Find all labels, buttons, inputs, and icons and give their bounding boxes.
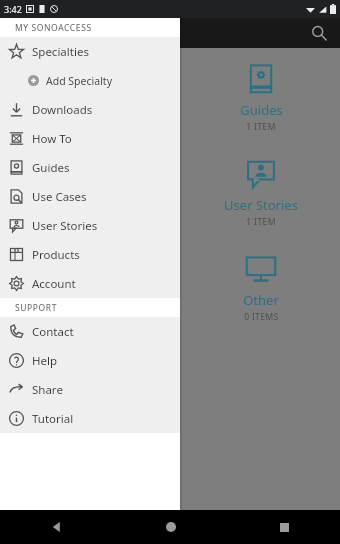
- staticText: User Stories: [32, 218, 98, 234]
- staticText: Help: [32, 353, 58, 369]
- button[interactable]: Recents: [267, 510, 301, 544]
- button[interactable]: Specialties: [0, 37, 180, 66]
- staticText: Other: [243, 291, 279, 309]
- button[interactable]: Contact: [0, 317, 180, 346]
- button[interactable]: Home: [154, 510, 188, 544]
- button[interactable]: How To: [0, 124, 180, 153]
- button[interactable]: Tutorial: [0, 404, 180, 433]
- button[interactable]: Products: [0, 240, 180, 269]
- button[interactable]: Use Cases: [0, 182, 180, 211]
- staticText: 1 ITEM: [246, 216, 276, 228]
- staticText: Guides: [32, 160, 70, 176]
- staticText: MY SONOACCESS: [15, 22, 92, 34]
- button[interactable]: Other: [206, 252, 316, 323]
- button[interactable]: Add Specialty: [0, 66, 180, 95]
- staticText: 0 ITEMS: [244, 311, 279, 323]
- staticText: Share: [32, 382, 63, 398]
- staticText: SUPPORT: [15, 302, 58, 314]
- staticText: Contact: [32, 324, 74, 340]
- staticText: Account: [32, 276, 76, 292]
- staticText: Specialties: [32, 44, 89, 60]
- button[interactable]: User Stories: [0, 211, 180, 240]
- staticText: How To: [32, 131, 72, 147]
- staticText: Add Specialty: [46, 74, 112, 88]
- staticText: Tutorial: [32, 411, 74, 427]
- staticText: 1 ITEM: [246, 121, 276, 133]
- staticText: Guides: [240, 101, 283, 119]
- button[interactable]: Search: [305, 19, 333, 47]
- button[interactable]: Back: [40, 510, 74, 544]
- staticText: Use Cases: [32, 189, 87, 205]
- staticText: Products: [32, 247, 80, 263]
- button[interactable]: User Stories: [206, 157, 316, 228]
- button[interactable]: Guides: [206, 62, 316, 133]
- staticText: 3:42: [4, 3, 22, 15]
- staticText: User Stories: [224, 196, 298, 214]
- button[interactable]: Guides: [0, 153, 180, 182]
- staticText: Downloads: [32, 102, 93, 118]
- button[interactable]: Share: [0, 375, 180, 404]
- button[interactable]: Help: [0, 346, 180, 375]
- staticText: Downloads: [50, 23, 129, 43]
- button[interactable]: Account: [0, 269, 180, 298]
- button[interactable]: Downloads: [0, 95, 180, 124]
